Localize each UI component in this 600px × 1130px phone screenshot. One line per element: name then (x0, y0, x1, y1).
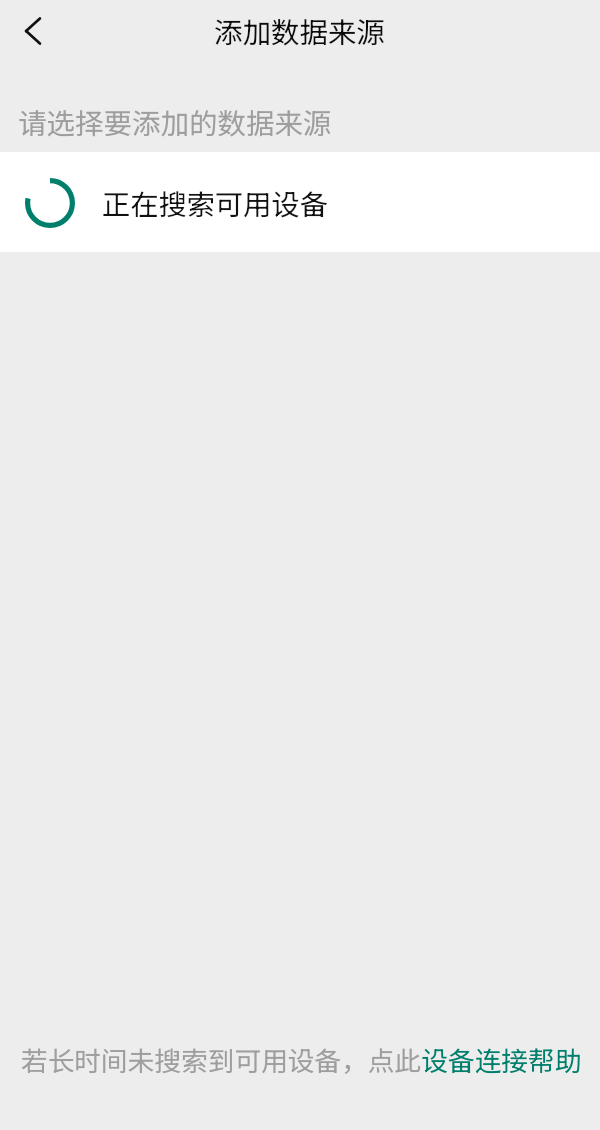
other: Searching (25, 178, 75, 228)
staticText: 添加数据来源 (214, 10, 386, 51)
button[interactable]: Searching (0, 152, 600, 252)
button[interactable]: Back (1, 0, 65, 63)
button[interactable]: 若长时间未搜索到可用设备，点此设备连接帮助 (0, 1019, 600, 1099)
staticText: 请选择要添加的数据来源 (18, 101, 332, 142)
staticText: 正在搜索可用设备 (102, 182, 328, 223)
staticText: 若长时间未搜索到可用设备，点此设备连接帮助 (21, 1040, 582, 1079)
